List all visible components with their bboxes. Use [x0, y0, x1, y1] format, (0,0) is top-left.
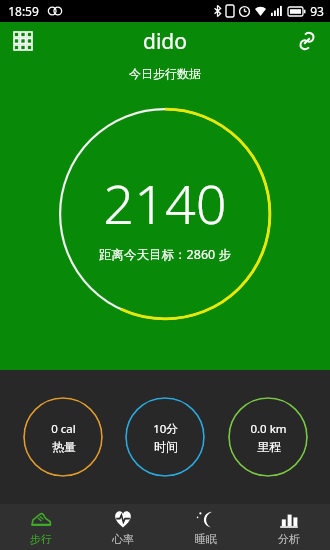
- staticText: 分析: [278, 532, 300, 546]
- button[interactable]: 分析: [247, 504, 330, 550]
- staticText: 10分: [153, 421, 178, 437]
- button[interactable]: 10分: [125, 397, 205, 477]
- staticText: 时间: [154, 439, 178, 454]
- staticText: 93: [310, 3, 324, 19]
- staticText: 距离今天目标：2860 步: [99, 246, 231, 263]
- staticText: 0.0 km: [250, 421, 287, 437]
- button[interactable]: Link device: [290, 24, 324, 58]
- staticText: 热量: [52, 439, 76, 454]
- button[interactable]: 步行: [0, 504, 82, 550]
- staticText: dido: [143, 27, 187, 56]
- staticText: 里程: [257, 439, 281, 454]
- staticText: 2140: [103, 166, 227, 240]
- staticText: 步行: [30, 532, 52, 546]
- staticText: 今日步行数据: [129, 66, 201, 81]
- button[interactable]: 睡眠: [164, 504, 247, 550]
- button[interactable]: 0.0 km: [228, 397, 308, 477]
- staticText: 睡眠: [195, 532, 217, 546]
- button[interactable]: 心率: [82, 504, 164, 550]
- staticText: 心率: [112, 532, 134, 546]
- button[interactable]: 0 cal: [23, 397, 103, 477]
- button[interactable]: Menu: [6, 24, 40, 58]
- staticText: 0 cal: [51, 421, 76, 437]
- staticText: 18:59: [8, 3, 39, 19]
